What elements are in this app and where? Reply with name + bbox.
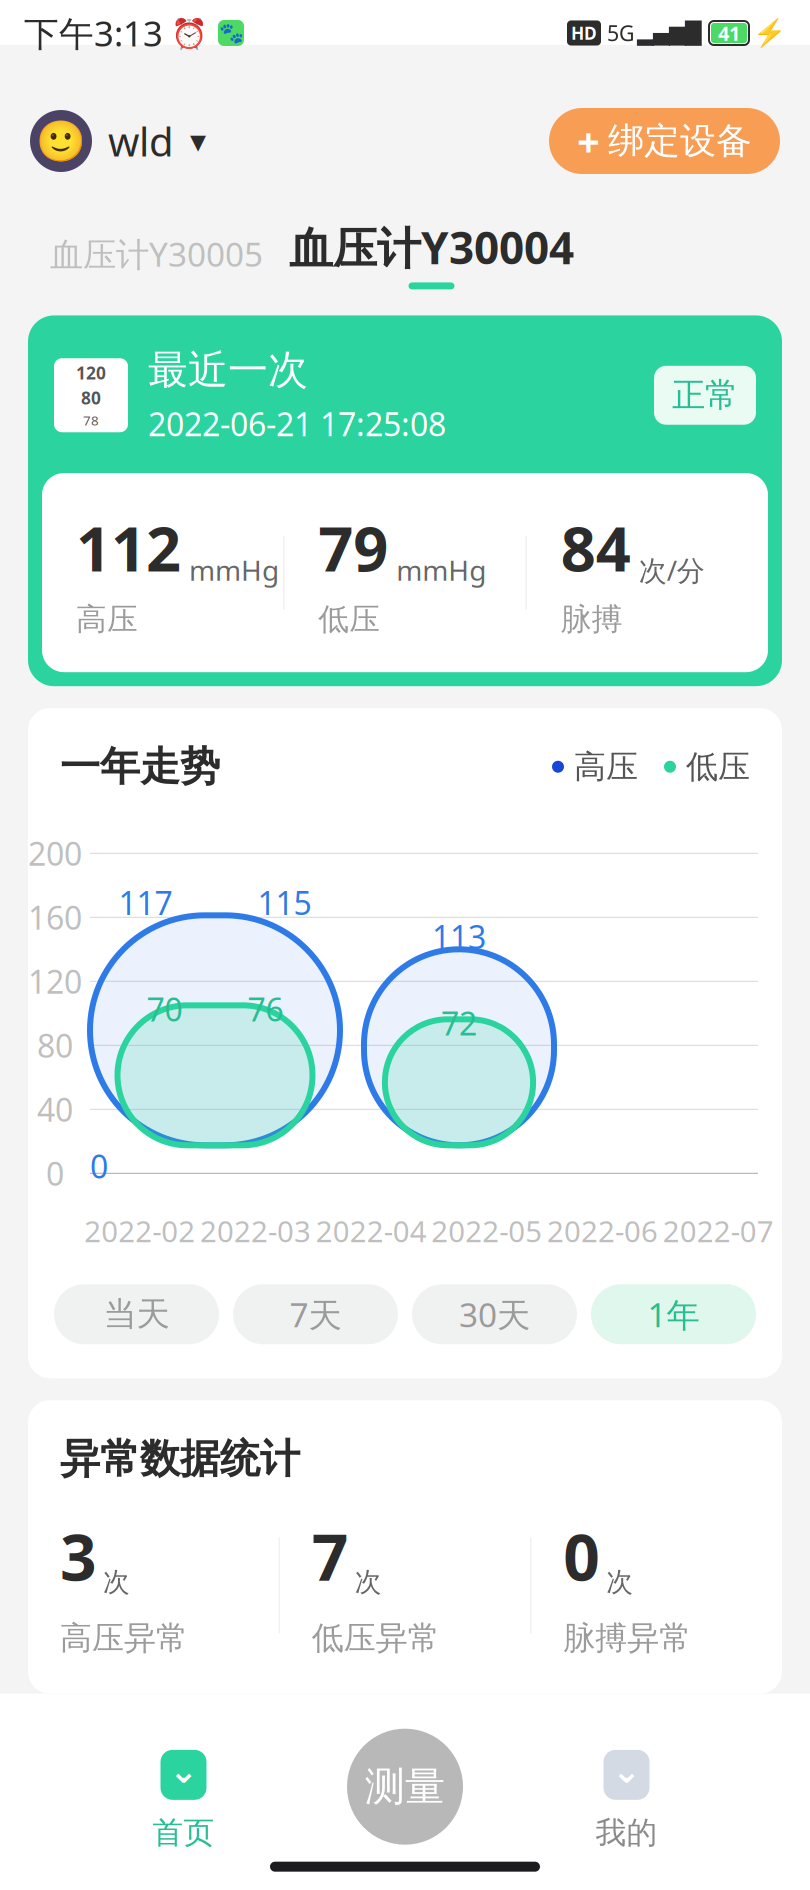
button[interactable]: 血压计Y30005 [50, 232, 263, 276]
staticText: 2022-03 [200, 1211, 311, 1250]
staticText: 1年 [647, 1292, 699, 1336]
staticText: 血压计Y30004 [289, 218, 574, 276]
staticText: 70 [146, 988, 182, 1030]
staticText: mmHg [189, 551, 279, 588]
staticText: 低压 [318, 600, 380, 638]
staticText: ▾ [190, 123, 206, 159]
staticText: 血压计Y30005 [50, 232, 263, 276]
staticText: 当天 [103, 1294, 169, 1335]
staticText: 7天 [289, 1292, 341, 1336]
staticText: ⌄ [612, 1751, 641, 1790]
staticText: 2022-05 [431, 1211, 542, 1250]
staticText: 异常数据统计 [60, 1434, 300, 1483]
staticText: 84 [561, 507, 631, 588]
staticText: 120 [76, 361, 106, 384]
staticText: ⏰ [163, 13, 208, 52]
staticText: 次 [103, 1566, 130, 1598]
staticText: 117 [118, 881, 172, 924]
button[interactable]: 7天 [233, 1284, 398, 1344]
staticText: 高压 [76, 600, 138, 638]
staticText: 高压异常 [60, 1618, 188, 1658]
button[interactable]: 当天 [54, 1284, 219, 1344]
staticText: 🐾 [218, 22, 243, 44]
staticText: 78 [83, 411, 99, 429]
staticText: 72 [441, 1002, 477, 1044]
button[interactable]: ⌄ [20, 1748, 347, 1851]
staticText: 低压 [686, 747, 750, 786]
staticText: 2022-06-21 17:25:08 [148, 403, 446, 445]
staticText: 115 [257, 881, 311, 924]
staticText: 2022-04 [316, 1211, 427, 1250]
staticText: 3 [60, 1513, 97, 1598]
staticText: 最近一次 [148, 345, 308, 394]
button[interactable]: 🙂 [30, 110, 206, 172]
staticText: 2022-06 [547, 1211, 658, 1250]
staticText: 160 [28, 896, 82, 939]
staticText: 高压 [574, 747, 638, 786]
staticText: 41 [718, 20, 740, 46]
staticText: 80 [37, 1024, 73, 1067]
staticText: 下午3:13 [24, 10, 163, 56]
button[interactable]: 1年 [591, 1284, 756, 1344]
staticText: 首页 [152, 1814, 214, 1851]
staticText: 一年走势 [60, 742, 220, 791]
staticText: 200 [28, 832, 82, 875]
staticText: ⌄ [169, 1751, 198, 1790]
staticText: 80 [81, 386, 101, 409]
staticText: 绑定设备 [608, 119, 752, 163]
staticText: 我的 [595, 1814, 657, 1851]
staticText: wld [108, 114, 174, 167]
button[interactable]: ⌄ [463, 1748, 790, 1851]
staticText: 112 [76, 507, 181, 588]
staticText: 0 [46, 1152, 64, 1195]
staticText: 40 [37, 1088, 73, 1131]
button[interactable]: 30天 [412, 1284, 577, 1344]
staticText: 76 [247, 988, 283, 1030]
staticText: 低压异常 [312, 1618, 440, 1658]
staticText: 次/分 [639, 551, 705, 588]
staticText: 正常 [672, 375, 738, 416]
staticText: 次 [355, 1566, 382, 1598]
staticText: 120 [28, 960, 82, 1003]
staticText: 7 [312, 1513, 349, 1598]
staticText: 30天 [459, 1292, 530, 1336]
staticText: 2022-07 [663, 1211, 774, 1250]
staticText: 测量 [365, 1762, 445, 1811]
staticText: ▂▄▆█ [637, 21, 701, 45]
staticText: 113 [432, 915, 486, 958]
staticText: 🙂 [36, 118, 86, 164]
staticText: 脉搏异常 [563, 1618, 691, 1658]
staticText: 5G [607, 19, 635, 47]
staticText: 0 [90, 1145, 108, 1187]
staticText: 0 [563, 1513, 600, 1598]
staticText: 脉搏 [561, 600, 623, 638]
staticText: ⚡ [753, 18, 786, 48]
staticText: 次 [606, 1566, 633, 1598]
staticText: mmHg [396, 551, 486, 588]
button[interactable]: 血压计Y30004 [289, 218, 574, 289]
staticText: 2022-02 [84, 1211, 195, 1250]
staticText: + [577, 114, 600, 167]
button[interactable]: 测量 [347, 1729, 463, 1871]
staticText: HD [571, 21, 597, 44]
staticText: 79 [318, 507, 388, 588]
button[interactable]: + [549, 108, 780, 174]
